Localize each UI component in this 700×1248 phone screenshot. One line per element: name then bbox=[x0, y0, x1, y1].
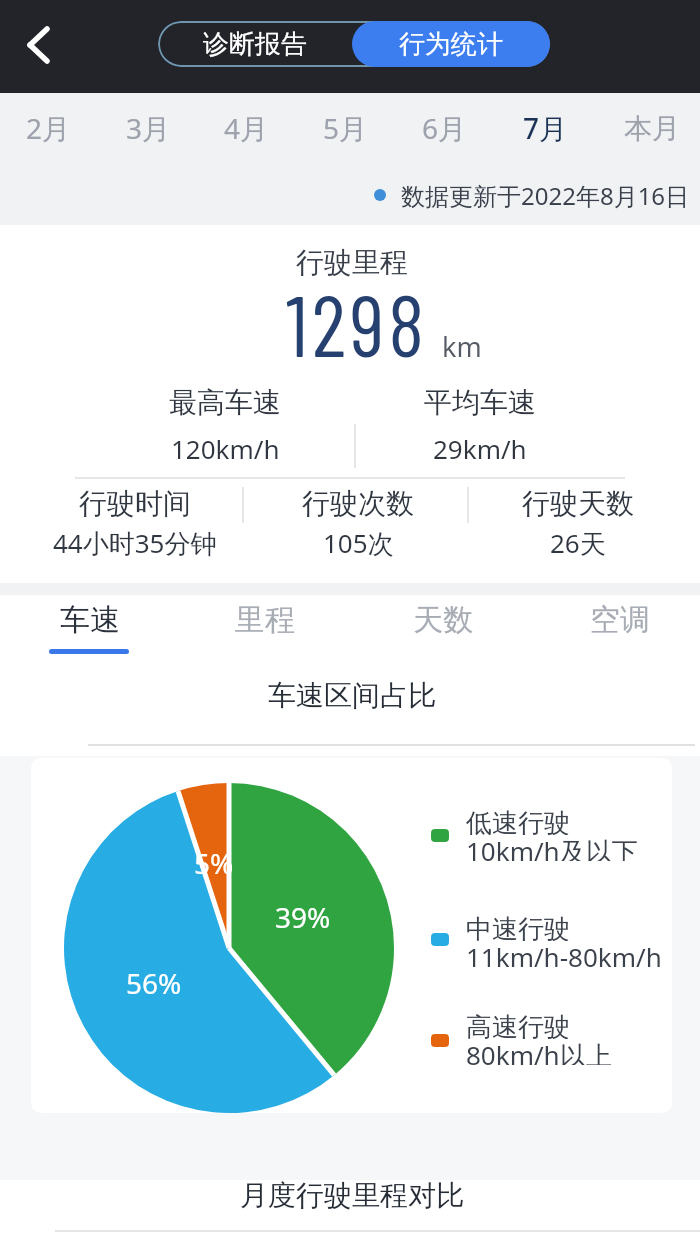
staticText: 中速行驶 bbox=[466, 913, 570, 941]
staticText: 里程 bbox=[235, 601, 295, 639]
button[interactable]: 7月 bbox=[501, 104, 589, 152]
staticText: 39% bbox=[275, 898, 331, 936]
staticText: 80km/h以上 bbox=[466, 1037, 612, 1065]
staticText: 11km/h-80km/h bbox=[466, 939, 662, 967]
button[interactable]: 诊断报告 bbox=[158, 21, 352, 67]
staticText: 行驶天数 bbox=[522, 486, 634, 521]
staticText: 行驶次数 bbox=[302, 486, 414, 521]
staticText: 44小时35分钟 bbox=[53, 525, 217, 561]
staticText: 天数 bbox=[413, 601, 473, 639]
button[interactable]: 行为统计 bbox=[352, 21, 550, 67]
staticText: 5月 bbox=[323, 109, 368, 147]
staticText: 4月 bbox=[224, 109, 269, 147]
staticText: 29km/h bbox=[433, 431, 527, 466]
staticText: 10km/h及以下 bbox=[466, 833, 638, 861]
staticText: 最高车速 bbox=[169, 385, 281, 420]
staticText: 数据更新于2022年8月16日 bbox=[401, 179, 690, 212]
button[interactable]: 4月 bbox=[202, 104, 290, 152]
button[interactable]: 3月 bbox=[104, 104, 192, 152]
button[interactable]: 天数 bbox=[383, 594, 503, 646]
staticText: 26天 bbox=[550, 525, 606, 561]
staticText: 车速 bbox=[60, 601, 120, 639]
staticText: 3月 bbox=[126, 109, 171, 147]
staticText: 高速行驶 bbox=[466, 1011, 570, 1039]
button[interactable]: 2月 bbox=[4, 104, 92, 152]
staticText: 月度行驶里程对比 bbox=[240, 1178, 464, 1213]
staticText: 行驶时间 bbox=[79, 486, 191, 521]
staticText: 5% bbox=[194, 844, 234, 882]
button[interactable]: 5月 bbox=[301, 104, 389, 152]
staticText: 6月 bbox=[422, 109, 467, 147]
button[interactable]: 车速 bbox=[30, 594, 150, 646]
staticText: 56% bbox=[126, 964, 182, 1002]
staticText: 105次 bbox=[323, 525, 394, 561]
staticText: 诊断报告 bbox=[203, 28, 307, 61]
staticText: 7月 bbox=[523, 109, 568, 147]
staticText: 120km/h bbox=[171, 431, 280, 466]
staticText: 平均车速 bbox=[424, 385, 536, 420]
button[interactable]: 6月 bbox=[400, 104, 488, 152]
staticText: 1298 bbox=[286, 272, 429, 372]
button[interactable]: 空调 bbox=[560, 594, 680, 646]
button[interactable]: 本月 bbox=[608, 104, 696, 152]
staticText: 行驶里程 bbox=[296, 245, 408, 280]
button[interactable]: 里程 bbox=[205, 594, 325, 646]
staticText: 本月 bbox=[624, 111, 680, 146]
button[interactable] bbox=[24, 24, 54, 66]
staticText: km bbox=[442, 328, 482, 365]
staticText: 行为统计 bbox=[399, 28, 503, 61]
staticText: 车速区间占比 bbox=[268, 678, 436, 713]
staticText: 低速行驶 bbox=[466, 807, 570, 835]
staticText: 空调 bbox=[590, 601, 650, 639]
staticText: 2月 bbox=[26, 109, 71, 147]
